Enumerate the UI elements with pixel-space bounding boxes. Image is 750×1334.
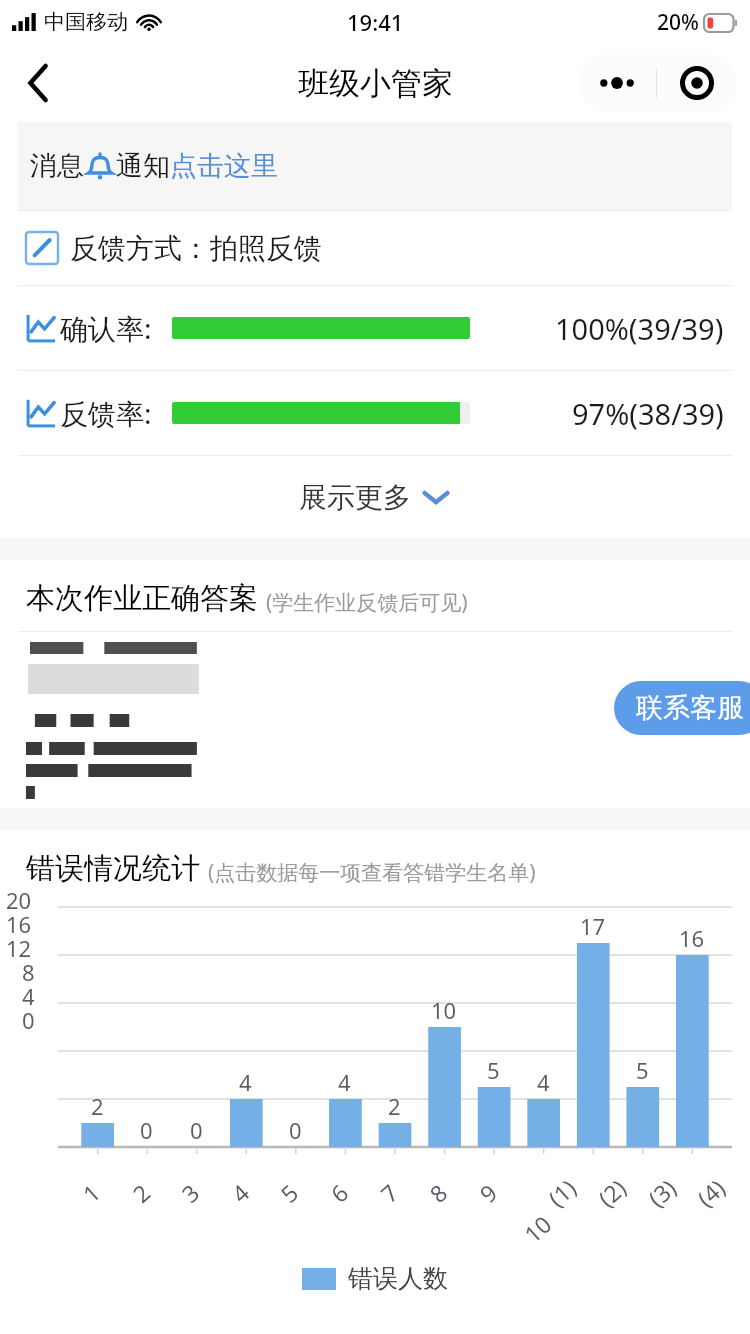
button[interactable]: 联系客服 (614, 681, 750, 735)
staticText: 2 (125, 1176, 156, 1209)
staticText: 错误人数 (348, 1263, 448, 1294)
staticText: 6 (323, 1176, 354, 1209)
staticText: 反馈率: (60, 394, 152, 432)
staticText: 16 (679, 923, 705, 953)
staticText: (2) (591, 1172, 632, 1213)
button[interactable]: Mini program menu (578, 54, 736, 112)
staticText: 97%(38/39) (572, 394, 724, 433)
staticText: 10 (431, 995, 457, 1025)
button[interactable]: 展示更多 (0, 456, 750, 538)
staticText: 8 (22, 957, 35, 987)
staticText: 12 (6, 933, 32, 963)
staticText: 4 (338, 1067, 351, 1097)
staticText: 反馈方式：拍照反馈 (70, 231, 322, 266)
staticText: 0 (140, 1115, 153, 1145)
staticText: 本次作业正确答案 (26, 580, 258, 617)
button[interactable]: 错误人数 (0, 1263, 750, 1294)
button[interactable]: 反馈方式：拍照反馈 (26, 211, 724, 285)
staticText: (3) (641, 1172, 682, 1213)
staticText: 5 (636, 1055, 649, 1085)
staticText: 20% (657, 8, 699, 37)
staticText: 17 (580, 911, 606, 941)
staticText: 2 (91, 1091, 104, 1121)
staticText: 0 (289, 1115, 302, 1145)
staticText: 2 (388, 1091, 401, 1121)
staticText: 中国移动 (44, 9, 128, 35)
staticText: 确认率: (60, 309, 152, 347)
staticText: 点击这里 (170, 149, 278, 183)
button[interactable]: 消息 (18, 122, 732, 210)
button[interactable]: 确认率: (26, 286, 724, 370)
staticText: 展示更多 (299, 480, 411, 515)
staticText: 1 (75, 1176, 106, 1209)
staticText: 20 (6, 885, 32, 915)
staticText: 4 (239, 1067, 252, 1097)
staticText: 5 (487, 1055, 500, 1085)
button[interactable]: 反馈率: (26, 371, 724, 455)
staticText: 联系客服 (636, 691, 744, 725)
staticText: 3 (174, 1176, 205, 1209)
staticText: (4) (690, 1172, 731, 1213)
staticText: (点击数据每一项查看答错学生名单) (208, 858, 536, 887)
staticText: 9 (472, 1176, 503, 1209)
staticText: 10 (517, 1208, 558, 1249)
staticText: 班级小管家 (298, 64, 453, 103)
staticText: 0 (190, 1115, 203, 1145)
staticText: 消息 (30, 149, 84, 183)
staticText: 100%(39/39) (555, 309, 724, 348)
staticText: 4 (224, 1176, 255, 1209)
staticText: 7 (373, 1176, 404, 1209)
staticText: (学生作业反馈后可见) (266, 588, 468, 617)
staticText: 4 (537, 1067, 550, 1097)
button[interactable]: Back (6, 51, 70, 115)
button[interactable]: 20 (0, 893, 750, 1173)
staticText: 错误情况统计 (26, 850, 200, 887)
staticText: 5 (273, 1176, 304, 1209)
staticText: 16 (6, 909, 32, 939)
staticText: 4 (22, 981, 35, 1011)
staticText: (1) (541, 1172, 582, 1213)
staticText: 0 (22, 1005, 35, 1035)
staticText: 通知 (116, 149, 170, 183)
staticText: 8 (422, 1176, 453, 1209)
staticText: 19:41 (347, 7, 404, 37)
